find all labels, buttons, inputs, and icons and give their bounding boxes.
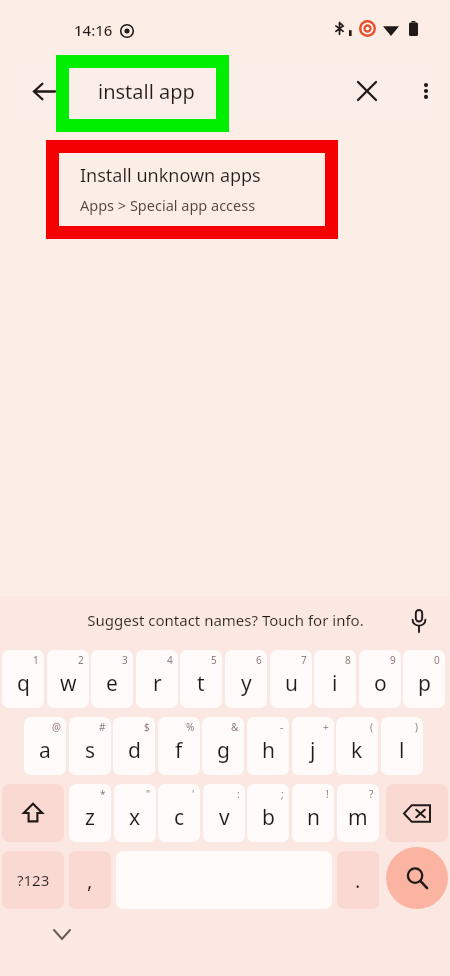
button[interactable]: n <box>292 784 334 842</box>
button[interactable]: h <box>247 717 289 775</box>
button[interactable]: b <box>247 784 289 842</box>
staticText: Apps > Special app access <box>80 195 256 215</box>
staticText: 3 <box>122 653 128 667</box>
button[interactable]: g <box>202 717 244 775</box>
button[interactable]: Back <box>24 71 64 111</box>
button[interactable]: y <box>225 650 267 708</box>
staticText: 6 <box>256 653 262 667</box>
button[interactable]: t <box>180 650 222 708</box>
staticText: 1 <box>33 653 39 667</box>
staticText: v <box>219 803 230 832</box>
button[interactable]: Voice input <box>404 606 434 636</box>
staticText: m <box>348 803 368 832</box>
staticText: g <box>217 736 230 765</box>
button[interactable]: . <box>337 851 379 909</box>
staticText: * <box>100 787 106 801</box>
staticText: q <box>17 669 30 698</box>
staticText: r <box>153 669 162 698</box>
button[interactable]: Search <box>386 847 448 909</box>
staticText: & <box>231 720 239 734</box>
button[interactable]: f <box>158 717 200 775</box>
button[interactable]: x <box>114 784 156 842</box>
staticText: 2 <box>78 653 84 667</box>
button[interactable]: q <box>2 650 44 708</box>
staticText: 8 <box>345 653 351 667</box>
button[interactable]: Shift <box>2 784 64 842</box>
staticText: @ <box>52 720 61 734</box>
staticText: install app <box>98 78 195 105</box>
staticText: Suggest contact names? Touch for info. <box>87 610 364 630</box>
staticText: x <box>129 803 141 832</box>
staticText: ) <box>415 720 418 734</box>
staticText: h <box>262 736 275 765</box>
button[interactable]: o <box>359 650 401 708</box>
button[interactable]: , <box>69 851 111 909</box>
staticText: i <box>332 669 338 698</box>
staticText: p <box>418 669 431 698</box>
staticText: # <box>99 720 106 734</box>
staticText: e <box>106 669 118 698</box>
button[interactable]: j <box>292 717 334 775</box>
staticText: : <box>237 787 240 801</box>
staticText: b <box>262 803 275 832</box>
button[interactable]: w <box>47 650 89 708</box>
button[interactable]: l <box>381 717 423 775</box>
staticText: z <box>85 803 95 832</box>
staticText: , <box>87 867 93 894</box>
button[interactable]: m <box>337 784 379 842</box>
button[interactable]: Backspace <box>386 784 448 842</box>
button[interactable]: c <box>158 784 200 842</box>
staticText: $ <box>144 720 150 734</box>
staticText: . <box>355 867 361 894</box>
button[interactable]: a <box>24 717 66 775</box>
button[interactable]: install app <box>70 62 330 120</box>
button[interactable]: k <box>336 717 378 775</box>
button[interactable]: u <box>270 650 312 708</box>
staticText: 14:16 <box>74 20 113 40</box>
staticText: ! <box>326 787 329 801</box>
button[interactable]: d <box>113 717 155 775</box>
staticText: ( <box>370 720 373 734</box>
staticText: n <box>307 803 320 832</box>
button[interactable]: Hide keyboard <box>42 914 82 954</box>
staticText: s <box>85 736 96 765</box>
button[interactable]: Clear search <box>347 71 387 111</box>
button[interactable]: v <box>203 784 245 842</box>
staticText: 0 <box>434 653 440 667</box>
staticText: t <box>197 669 205 698</box>
staticText: j <box>310 736 316 765</box>
button[interactable]: e <box>91 650 133 708</box>
staticText: c <box>174 803 185 832</box>
staticText: Install unknown apps <box>80 163 261 188</box>
staticText: ; <box>281 787 284 801</box>
staticText: a <box>39 736 51 765</box>
staticText: 7 <box>301 653 307 667</box>
staticText: 5 <box>211 653 217 667</box>
staticText: - <box>280 720 284 734</box>
button[interactable]: z <box>69 784 111 842</box>
staticText: l <box>399 736 405 765</box>
staticText: u <box>285 669 298 698</box>
staticText: 4 <box>167 653 173 667</box>
button[interactable]: More options <box>406 71 440 111</box>
staticText: 9 <box>390 653 396 667</box>
staticText: " <box>146 787 151 801</box>
button[interactable]: r <box>136 650 178 708</box>
button[interactable]: ?123 <box>2 851 64 909</box>
staticText: y <box>241 669 252 698</box>
staticText: k <box>351 736 363 765</box>
button[interactable]: Install unknown apps <box>0 140 450 238</box>
button[interactable]: p <box>403 650 445 708</box>
staticText: f <box>175 736 183 765</box>
staticText: ?123 <box>17 870 50 890</box>
button[interactable]: i <box>314 650 356 708</box>
button[interactable]: s <box>69 717 111 775</box>
staticText: ? <box>369 787 374 801</box>
staticText: o <box>374 669 387 698</box>
staticText: d <box>128 736 141 765</box>
button[interactable]: Suggest contact names? Touch for info. <box>0 596 450 644</box>
staticText: ' <box>192 787 195 801</box>
staticText: w <box>60 669 77 698</box>
staticText: % <box>186 720 195 734</box>
